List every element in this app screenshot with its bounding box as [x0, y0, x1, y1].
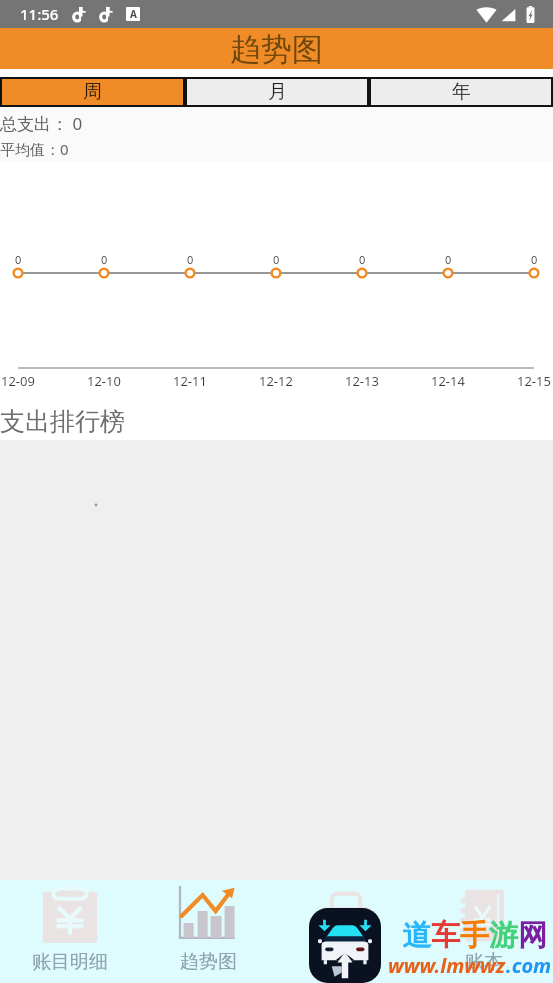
staticText: 0: [359, 252, 366, 267]
staticText: 平均值：0: [0, 139, 69, 159]
staticText: 12-12: [259, 372, 293, 390]
staticText: 月: [268, 80, 287, 104]
staticText: 周: [83, 80, 102, 104]
button[interactable]: 周: [0, 77, 185, 107]
staticText: 总支出： 0: [0, 112, 83, 135]
staticText: .com: [506, 952, 552, 979]
staticText: 0: [15, 252, 22, 267]
staticText: www.lmwwz: [388, 952, 506, 979]
staticText: 12-13: [345, 372, 379, 390]
staticText: 11:56: [20, 4, 59, 24]
staticText: 12-15: [517, 372, 551, 390]
button[interactable]: 趋势图: [139, 880, 277, 983]
staticText: 网: [518, 917, 547, 954]
button[interactable]: 预算: [277, 880, 415, 983]
staticText: 0: [273, 252, 280, 267]
staticText: 账本: [465, 950, 503, 974]
staticText: 年: [452, 80, 471, 104]
button[interactable]: 年: [369, 77, 553, 107]
staticText: 车: [431, 917, 460, 954]
staticText: 支出排行榜: [0, 406, 125, 437]
staticText: 0: [445, 252, 452, 267]
staticText: 12-09: [1, 372, 35, 390]
staticText: 0: [101, 252, 108, 267]
staticText: 12-11: [173, 372, 207, 390]
staticText: 预算: [327, 950, 365, 974]
staticText: 0: [187, 252, 194, 267]
staticText: 12-10: [87, 372, 121, 390]
staticText: 手: [460, 917, 489, 954]
button[interactable]: 账目明细: [0, 880, 139, 983]
staticText: 趋势图: [230, 30, 323, 69]
staticText: 道: [402, 917, 431, 954]
staticText: 0: [531, 252, 538, 267]
staticText: 12-14: [431, 372, 465, 390]
staticText: 游: [489, 917, 518, 954]
staticText: 趋势图: [180, 950, 237, 974]
button[interactable]: 月: [185, 77, 369, 107]
staticText: A: [130, 7, 137, 21]
button[interactable]: 账本: [415, 880, 553, 983]
staticText: 账目明细: [32, 950, 108, 974]
